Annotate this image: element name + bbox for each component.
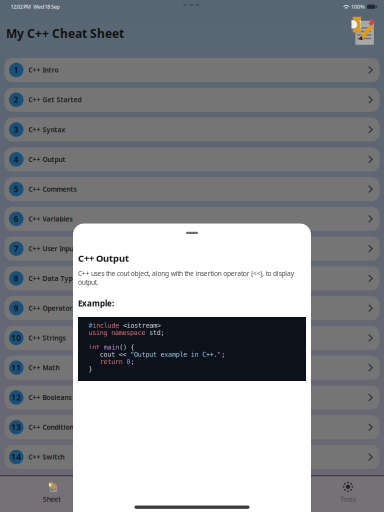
button[interactable]: 10: [4, 326, 379, 350]
staticText: using namespace: [88, 329, 149, 336]
staticText: C++ Math: [28, 363, 59, 372]
staticText: int: [88, 343, 104, 351]
button[interactable]: 4: [4, 147, 379, 171]
staticText: C++ User Input: [28, 244, 76, 253]
staticText: C++ Syntax: [28, 125, 65, 134]
staticText: cout <<: [88, 351, 130, 358]
staticText: C++ Strings: [28, 333, 65, 342]
staticText: 11: [11, 362, 21, 373]
staticText: C++ Data Types: [28, 274, 79, 283]
button[interactable]: 6: [4, 207, 379, 231]
staticText: 3: [14, 124, 19, 135]
button[interactable]: Sheet: [32, 480, 72, 504]
staticText: 5: [14, 184, 19, 194]
button[interactable]: 1: [4, 58, 379, 82]
staticText: 14: [11, 452, 21, 462]
staticText: Tools: [340, 495, 356, 504]
staticText: 1: [14, 65, 19, 75]
staticText: 4: [14, 154, 19, 165]
staticText: C++ Output: [78, 252, 129, 264]
staticText: C++ Get Started: [28, 95, 81, 104]
button[interactable]: 3: [4, 117, 379, 141]
staticText: C++ Operators: [28, 304, 75, 313]
button[interactable]: 7: [4, 237, 379, 261]
staticText: 10: [11, 333, 21, 343]
staticText: C++ Variables: [28, 214, 72, 223]
button[interactable]: 13: [4, 415, 379, 439]
staticText: }: [88, 365, 92, 373]
staticText: C++ Output: [28, 155, 65, 164]
staticText: C++ Switch: [28, 453, 64, 461]
button[interactable]: 5: [4, 177, 379, 201]
staticText: ;: [130, 358, 134, 365]
button[interactable]: 14: [4, 445, 379, 469]
staticText: <iostream>: [123, 322, 161, 329]
staticText: 6: [14, 213, 19, 224]
staticText: return: [88, 358, 126, 365]
staticText: #: [88, 322, 92, 329]
staticText: include: [92, 322, 123, 329]
staticText: 100%: [351, 3, 365, 10]
staticText: C++ Intro: [28, 66, 58, 74]
staticText: () {: [119, 343, 134, 351]
staticText: 2: [14, 94, 19, 105]
staticText: C++ Booleans: [28, 393, 71, 402]
staticText: 12: [11, 392, 21, 403]
staticText: 8: [14, 273, 19, 284]
staticText: main: [104, 343, 119, 351]
staticText: Sheet: [43, 495, 61, 504]
button[interactable]: 11: [4, 356, 379, 380]
staticText: C++ Comments: [28, 185, 76, 194]
staticText: "Output example in C++.": [130, 351, 221, 358]
staticText: 12:02 PM Wed 18 Sep: [10, 3, 59, 10]
button[interactable]: Tools: [328, 480, 368, 504]
staticText: My C++ Cheat Sheet: [6, 25, 124, 41]
staticText: std;: [149, 329, 164, 336]
button[interactable]: 9: [4, 296, 379, 320]
button[interactable]: Cheat sheet: [345, 15, 375, 45]
staticText: ;: [221, 351, 225, 358]
staticText: 7: [14, 243, 19, 254]
staticText: 9: [14, 303, 19, 313]
staticText: C++ uses the cout object, along with the…: [78, 269, 294, 287]
button[interactable]: 8: [4, 266, 379, 290]
button[interactable]: 2: [4, 88, 379, 112]
staticText: Example:: [78, 298, 114, 309]
staticText: C++ Conditions: [28, 423, 76, 432]
staticText: 0: [126, 358, 130, 365]
button[interactable]: 12: [4, 385, 379, 409]
staticText: 13: [11, 422, 21, 432]
